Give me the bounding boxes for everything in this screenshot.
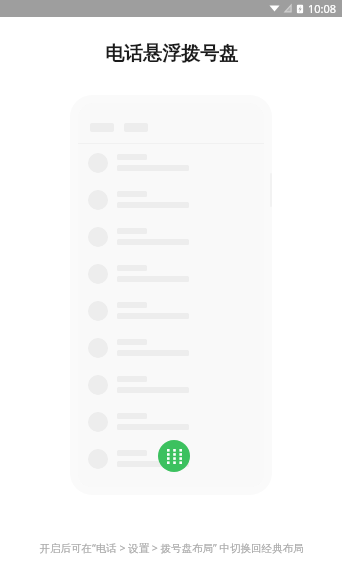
button[interactable] [78, 403, 264, 440]
button[interactable] [78, 292, 264, 329]
button[interactable] [78, 218, 264, 255]
button[interactable] [78, 329, 264, 366]
button[interactable] [78, 255, 264, 292]
staticText: 10:08 [308, 1, 337, 16]
staticText: 开启后可在“电话 > 设置 > 拨号盘布局” 中切换回经典布局 [39, 541, 304, 555]
button[interactable] [78, 144, 264, 181]
button[interactable] [78, 181, 264, 218]
button[interactable]: 拨号盘 [158, 440, 190, 472]
button[interactable] [78, 440, 264, 477]
staticText: 电话悬浮拨号盘 [105, 42, 238, 66]
button[interactable] [78, 366, 264, 403]
